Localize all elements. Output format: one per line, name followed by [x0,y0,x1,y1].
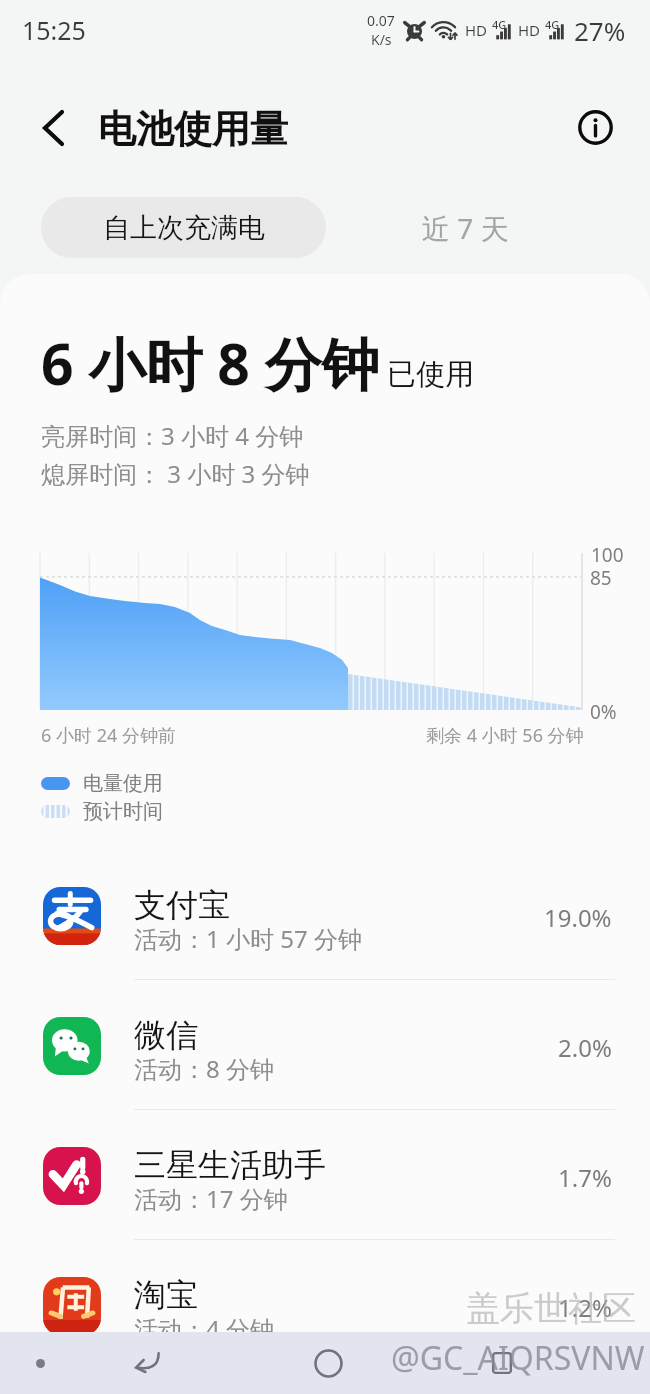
button[interactable] [0,1109,650,1239]
staticText: 活动：4 分钟 [134,1312,274,1345]
staticText: 盖乐世社区 [466,1287,636,1330]
staticText: 活动：17 分钟 [134,1182,288,1215]
button[interactable]: Show keyboard [0,1332,80,1394]
button[interactable]: 近 7 天 [350,197,580,258]
staticText: 85 [590,565,612,591]
staticText: 1.2% [558,1291,612,1324]
staticText: 6 小时 8 分钟 [41,324,379,402]
staticText: 电量使用 [83,771,163,796]
staticText: 预计时间 [83,799,163,824]
staticText: 近 7 天 [422,209,509,247]
staticText: 0% [590,699,617,725]
staticText: 活动：1 小时 57 分钟 [134,922,362,955]
button[interactable]: Information [573,105,617,149]
button[interactable] [0,979,650,1109]
staticText: 电池使用量 [98,105,288,153]
staticText: 1.7% [558,1161,612,1194]
button[interactable]: 自上次充满电 [41,197,326,258]
staticText: 4G [492,17,507,32]
staticText: 100 [591,542,624,568]
button[interactable]: Back [26,100,78,152]
button[interactable] [0,849,650,979]
button[interactable]: Back [106,1332,186,1394]
button[interactable] [0,1239,650,1369]
staticText: 淘宝 [134,1275,198,1315]
staticText: 亮屏时间：3 小时 4 分钟 [41,419,304,452]
button[interactable]: Recent apps [462,1332,542,1394]
staticText: 27% [574,13,626,48]
staticText: @GC_AIQRSVNW [391,1336,645,1380]
staticText: 已使用 [387,356,474,393]
staticText: 19.0% [544,901,612,934]
staticText: 2.0% [558,1031,612,1064]
staticText: HD [518,20,541,40]
staticText: 支付宝 [134,885,230,925]
staticText: 4G [545,17,560,32]
staticText: 微信 [134,1015,198,1055]
staticText: 剩余 4 小时 56 分钟 [426,723,584,748]
button[interactable]: Home [288,1332,368,1394]
staticText: 15:25 [22,13,86,47]
staticText: 自上次充满电 [103,211,265,245]
staticText: 熄屏时间： 3 小时 3 分钟 [41,457,310,490]
staticText: 活动：8 分钟 [134,1052,274,1085]
staticText: 6 小时 24 分钟前 [41,723,176,748]
staticText: 0.07 [367,11,395,30]
staticText: HD [465,20,488,40]
staticText: K/s [371,30,392,49]
staticText: 三星生活助手 [134,1145,326,1185]
